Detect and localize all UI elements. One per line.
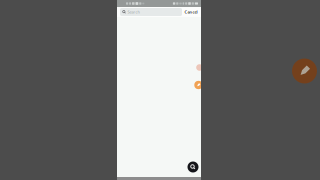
- staticText: Cancel: [184, 9, 197, 15]
- button[interactable]: Cancel: [184, 8, 198, 16]
- button[interactable]: Compose: [194, 81, 203, 89]
- staticText: Search: [128, 9, 140, 15]
- button[interactable]: Compose: [292, 58, 317, 83]
- button[interactable]: Search: [187, 161, 198, 172]
